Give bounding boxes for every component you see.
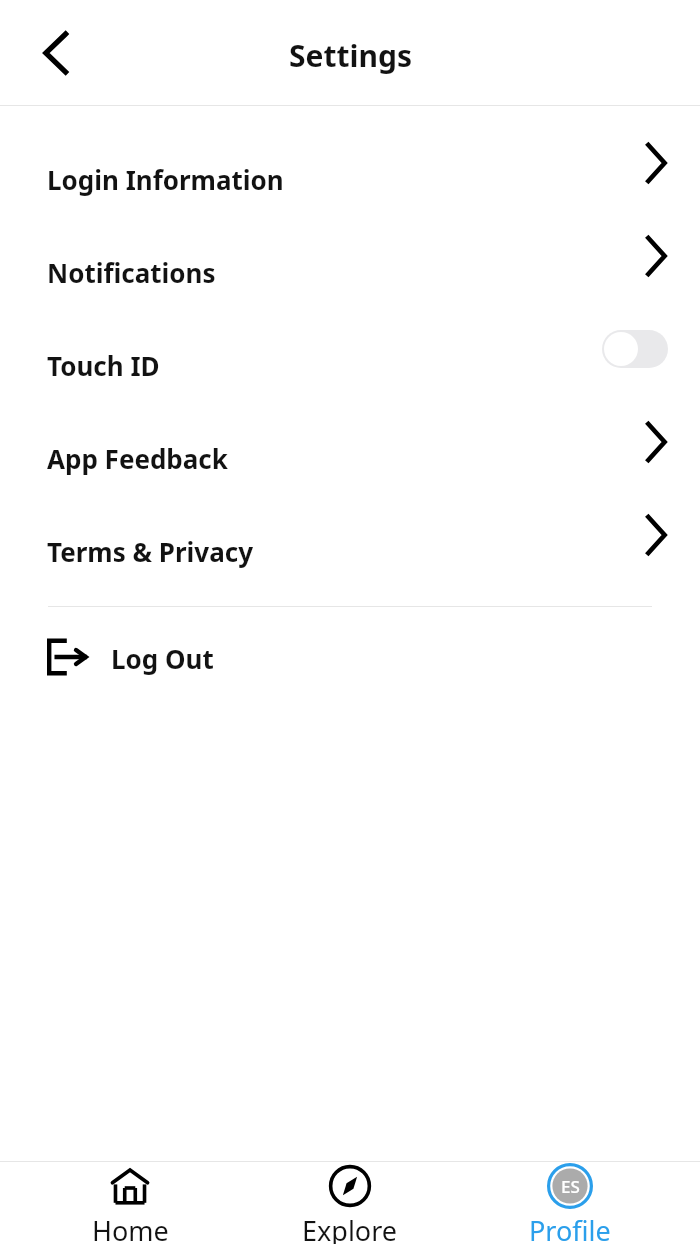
staticText: Explore (302, 1212, 398, 1244)
staticText: Notifications (47, 255, 216, 290)
other: Open Login Information (644, 143, 668, 183)
staticText: Profile (529, 1212, 611, 1244)
staticText: App Feedback (47, 441, 228, 476)
other: Open Notifications (644, 236, 668, 276)
button[interactable] (602, 330, 668, 368)
staticText: Terms & Privacy (47, 534, 253, 569)
button[interactable]: ES (480, 1162, 660, 1244)
staticText: Settings (289, 35, 412, 76)
button[interactable]: Terms & Privacy (0, 498, 700, 591)
staticText: Log Out (111, 641, 214, 676)
button[interactable]: App Feedback (0, 405, 700, 498)
button[interactable]: Home (40, 1162, 220, 1244)
button[interactable]: Notifications (0, 219, 700, 312)
button[interactable]: Explore (260, 1162, 440, 1244)
other: Open Terms and Privacy (644, 515, 668, 555)
other: Open App Feedback (644, 422, 668, 462)
button[interactable]: Login Information (0, 126, 700, 219)
button[interactable]: Touch ID (0, 312, 700, 405)
staticText: Touch ID (47, 348, 160, 383)
staticText: Login Information (47, 162, 284, 197)
staticText: Home (92, 1212, 169, 1244)
button[interactable]: Back (26, 23, 86, 83)
button[interactable]: Log Out (0, 607, 700, 707)
other: Touch ID toggle (602, 330, 668, 368)
staticText: ES (561, 1175, 580, 1198)
